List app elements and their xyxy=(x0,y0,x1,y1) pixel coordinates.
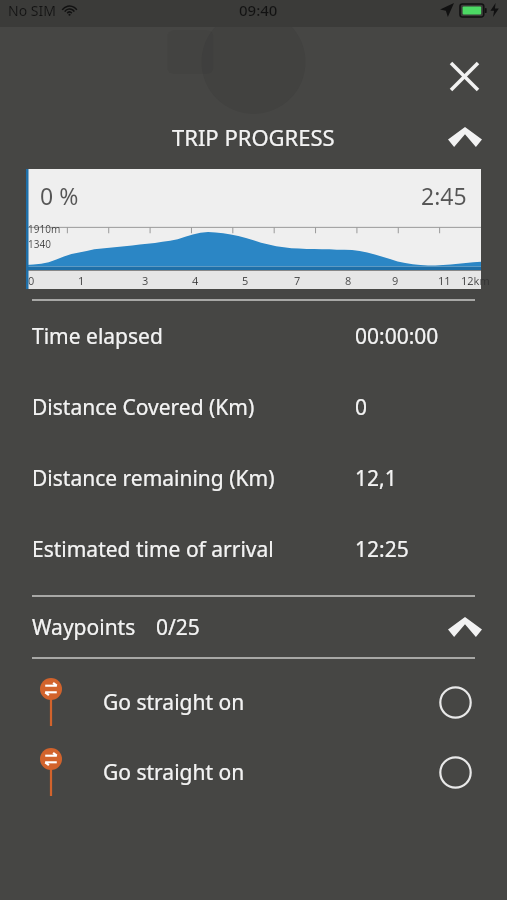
button[interactable]: Collapse trip progress xyxy=(445,117,485,157)
staticText: Distance remaining (Km) xyxy=(32,464,275,493)
button[interactable]: Distance remaining (Km) xyxy=(0,443,507,514)
button[interactable]: Estimated time of arrival xyxy=(0,514,507,585)
staticText: 12,1 xyxy=(355,464,397,493)
button[interactable]: Collapse waypoints xyxy=(445,607,485,647)
button[interactable]: TRIP PROGRESS xyxy=(0,115,507,159)
button[interactable]: Time elapsed xyxy=(0,301,507,372)
staticText: TRIP PROGRESS xyxy=(172,122,335,152)
staticText: Go straight on xyxy=(103,758,245,787)
button[interactable]: Mark waypoint reached xyxy=(435,682,475,722)
staticText: 1340 xyxy=(28,237,51,251)
staticText: Distance Covered (Km) xyxy=(32,393,255,422)
button[interactable]: 0 % xyxy=(26,169,481,289)
staticText: 0 xyxy=(28,273,35,288)
staticText: 1910m xyxy=(28,222,61,236)
button[interactable]: Waypoints xyxy=(0,597,507,657)
staticText: No SIM xyxy=(8,1,56,20)
staticText: 3 xyxy=(142,273,149,288)
staticText: 12km xyxy=(461,273,490,288)
staticText: 2:45 xyxy=(421,180,467,211)
staticText: Estimated time of arrival xyxy=(32,535,274,564)
staticText: 11 xyxy=(438,273,451,288)
staticText: 0/25 xyxy=(156,613,200,642)
staticText: 8 xyxy=(345,273,352,288)
staticText: 7 xyxy=(294,273,301,288)
staticText: 0 % xyxy=(40,180,79,211)
staticText: 9 xyxy=(392,273,399,288)
staticText: 09:40 xyxy=(239,0,278,20)
button[interactable]: Distance Covered (Km) xyxy=(0,372,507,443)
staticText: Time elapsed xyxy=(32,322,163,351)
button[interactable]: Mark waypoint reached xyxy=(435,752,475,792)
staticText: 1 xyxy=(78,273,85,288)
staticText: Waypoints xyxy=(32,613,136,642)
staticText: 4 xyxy=(192,273,199,288)
staticText: 5 xyxy=(242,273,249,288)
staticText: 00:00:00 xyxy=(355,322,439,351)
staticText: Go straight on xyxy=(103,688,245,717)
button[interactable]: Go straight on xyxy=(0,667,507,737)
staticText: 0 xyxy=(355,393,368,422)
staticText: 12:25 xyxy=(355,535,409,564)
button[interactable]: Close xyxy=(443,55,485,97)
button[interactable]: Go straight on xyxy=(0,737,507,807)
